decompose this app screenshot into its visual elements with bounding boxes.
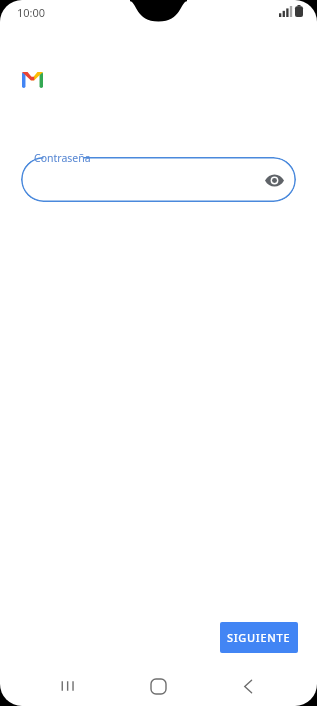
- button[interactable]: Mostrar contraseña: [21, 157, 296, 202]
- staticText: SIGUIENTE: [227, 630, 291, 645]
- staticText: 10:00: [17, 5, 46, 20]
- button[interactable]: Mostrar contraseña: [258, 164, 290, 196]
- button[interactable]: SIGUIENTE: [220, 622, 298, 653]
- staticText: Contraseña: [34, 151, 91, 165]
- button[interactable]: Recientes: [52, 670, 84, 702]
- button[interactable]: Atrás: [232, 670, 264, 702]
- button[interactable]: Inicio: [142, 670, 174, 702]
